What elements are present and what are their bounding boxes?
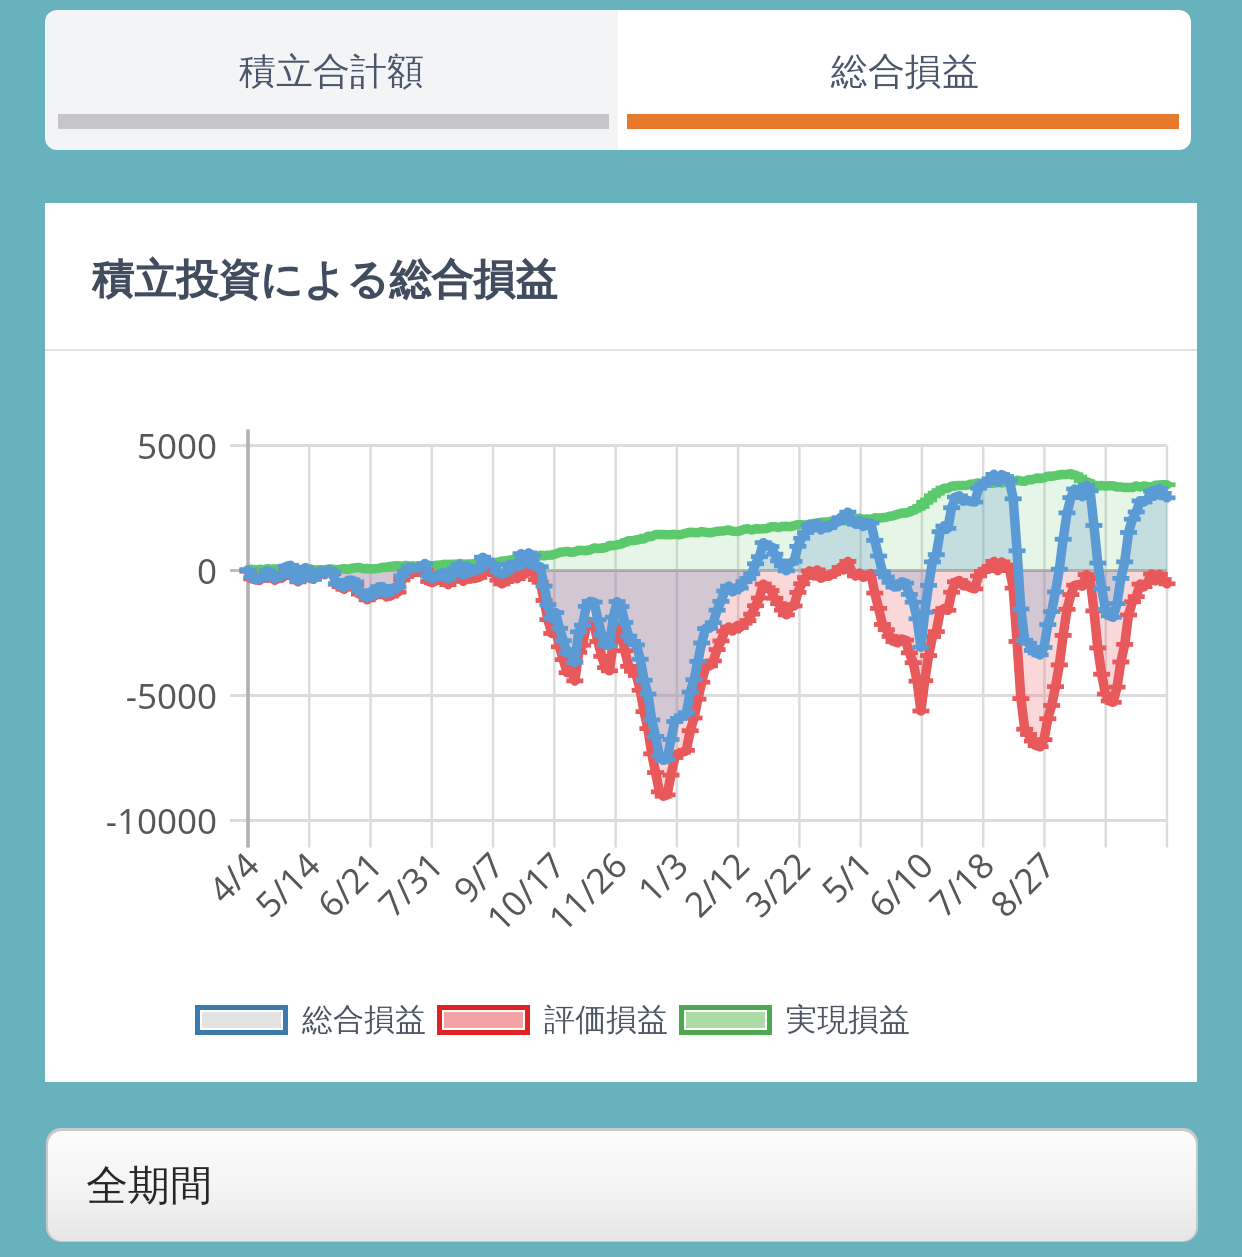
staticText: 7/18: [919, 841, 1005, 927]
button[interactable]: 総合損益: [618, 10, 1191, 150]
staticText: 2/12: [674, 841, 760, 927]
staticText: 5/1: [811, 841, 883, 913]
staticText: 6/21: [307, 841, 393, 927]
staticText: -10000: [45, 797, 217, 845]
staticText: 7/31: [368, 841, 454, 927]
staticText: 3/22: [735, 841, 821, 927]
staticText: 積立合計額: [239, 48, 424, 95]
button[interactable]: 積立合計額: [45, 10, 618, 150]
staticText: 4/4: [198, 841, 270, 913]
staticText: 積立投資による総合損益: [92, 254, 557, 307]
staticText: 評価損益: [544, 1000, 668, 1039]
staticText: 全期間: [86, 1160, 212, 1213]
staticText: 総合損益: [831, 48, 979, 95]
staticText: 9/7: [443, 841, 515, 913]
staticText: 1/3: [627, 841, 699, 913]
staticText: 実現損益: [786, 1000, 910, 1039]
staticText: 総合損益: [302, 1000, 426, 1039]
staticText: 5000: [45, 422, 217, 470]
staticText: -5000: [45, 672, 217, 720]
staticText: 0: [45, 547, 217, 595]
staticText: 6/10: [858, 841, 944, 927]
staticText: 5/14: [245, 841, 331, 927]
staticText: 8/27: [980, 841, 1066, 927]
staticText: 11/26: [537, 841, 638, 941]
button[interactable]: 全期間: [46, 1128, 1198, 1242]
staticText: 10/17: [475, 841, 576, 941]
